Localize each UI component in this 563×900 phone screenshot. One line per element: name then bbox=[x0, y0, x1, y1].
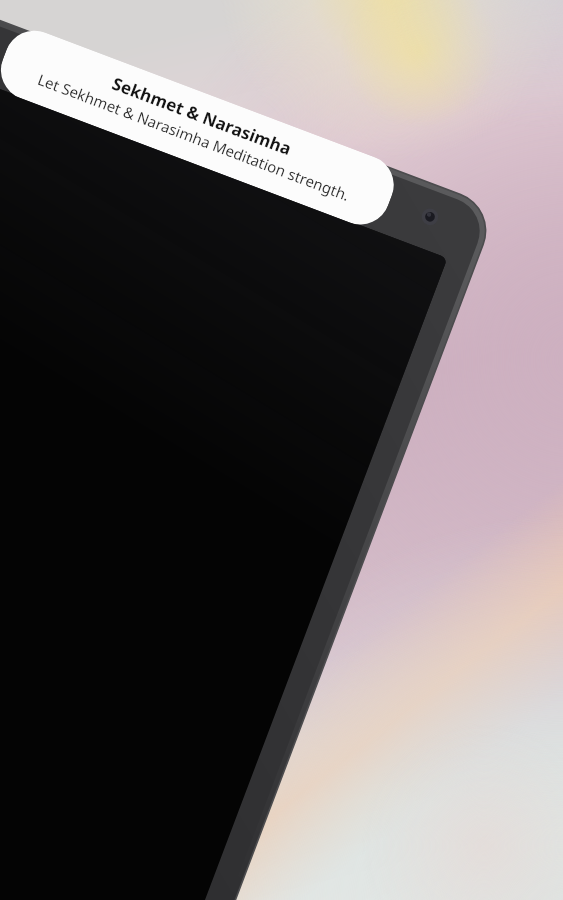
button[interactable]: Sekhmet & Narasimha notification bbox=[0, 22, 402, 233]
staticText: Let Sekhmet & Narasimha Meditation stren… bbox=[22, 64, 366, 210]
staticText: Sekhmet & Narasimha bbox=[29, 41, 374, 190]
